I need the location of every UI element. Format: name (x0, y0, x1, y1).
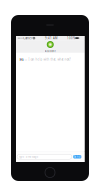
button[interactable]: Send (73, 155, 81, 158)
staticText: Send (74, 155, 81, 158)
staticText: Carrier (23, 36, 32, 40)
staticText: — I can help with that, what next? (24, 58, 70, 61)
staticText: 100% (67, 36, 75, 40)
staticText: 9:41 AM (45, 36, 57, 40)
staticText: Assistant (45, 49, 56, 53)
staticText: Hi (20, 57, 24, 62)
staticText: Type a message (19, 155, 39, 158)
button[interactable]: Type a message (17, 154, 72, 159)
